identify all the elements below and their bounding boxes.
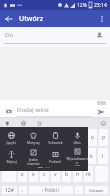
button[interactable]: Języki: [19, 119, 27, 127]
button[interactable]: Wyślij: [95, 106, 106, 117]
staticText: y: [58, 134, 61, 141]
button[interactable]: Motywy: [22, 129, 44, 147]
button[interactable]: Wyszukiwanie GIF: [66, 147, 88, 166]
staticText: m: [86, 171, 91, 178]
button[interactable]: d: [26, 148, 36, 164]
button[interactable]: Dodaj kontakt: [93, 29, 105, 41]
staticText: x: [32, 171, 35, 178]
staticText: Do: [5, 31, 14, 39]
button[interactable]: .: [75, 186, 83, 194]
staticText: b: [65, 171, 69, 178]
button[interactable]: Wybór: [3, 119, 11, 127]
staticText: .: [78, 187, 80, 194]
button[interactable]: p: [99, 129, 108, 146]
button[interactable]: t: [44, 129, 53, 146]
staticText: r: [36, 134, 39, 141]
staticText: n: [76, 171, 80, 178]
staticText: k: [90, 153, 93, 160]
button[interactable]: g: [50, 148, 60, 164]
staticText: 12%: [77, 2, 87, 9]
button[interactable]: Gotowe: [85, 186, 108, 194]
staticText: z: [21, 171, 24, 178]
button[interactable]: u: [66, 129, 75, 146]
staticText: v: [54, 171, 57, 178]
button[interactable]: Edytuj: [0, 147, 22, 166]
button[interactable]: n: [73, 166, 82, 182]
staticText: Wyszukiwanie GIF: [66, 156, 88, 166]
button[interactable]: a: [2, 148, 12, 164]
staticText: 12#: [5, 187, 14, 194]
staticText: g: [53, 153, 57, 160]
button[interactable]: m: [84, 166, 93, 182]
staticText: l: [102, 153, 104, 160]
button[interactable]: Schowek: [44, 129, 66, 147]
staticText: ,: [22, 187, 24, 194]
staticText: Schowek: [48, 140, 63, 145]
button[interactable]: c: [40, 166, 49, 182]
button[interactable]: 12#: [2, 186, 17, 194]
button[interactable]: ,: [19, 186, 27, 194]
button[interactable]: v: [51, 166, 60, 182]
staticText: a: [6, 153, 9, 160]
staticText: ‹ Polski ›: [42, 187, 60, 193]
staticText: 23:14: [94, 2, 107, 9]
button[interactable]: x: [29, 166, 38, 182]
button[interactable]: h: [62, 148, 72, 164]
button[interactable]: z: [18, 166, 27, 182]
button[interactable]: r: [33, 129, 42, 146]
staticText: Edytuj: [6, 159, 17, 164]
button[interactable]: [2, 166, 16, 182]
staticText: Motywy: [27, 140, 40, 145]
staticText: o: [91, 134, 95, 141]
button[interactable]: w: [12, 129, 20, 146]
staticText: Dodaj tekst: [17, 106, 49, 114]
button[interactable]: Rozmiar: [97, 101, 106, 105]
staticText: Jeden rozmiar: [27, 157, 40, 166]
staticText: Utwórz: [19, 14, 44, 24]
button[interactable]: l: [98, 148, 108, 164]
button[interactable]: b: [62, 166, 71, 182]
button[interactable]: Aparat: [4, 106, 15, 117]
staticText: Gotowe: [89, 188, 104, 193]
button[interactable]: Podziel: [44, 147, 66, 166]
button[interactable]: q: [2, 129, 10, 146]
button[interactable]: e: [22, 129, 31, 146]
button[interactable]: Języki: [0, 129, 22, 147]
staticText: j: [78, 153, 80, 160]
staticText: h: [65, 153, 69, 160]
button[interactable]: Wstecz: [0, 10, 17, 27]
staticText: Języki: [6, 140, 16, 145]
staticText: d: [29, 153, 33, 160]
staticText: w: [14, 134, 18, 141]
button[interactable]: Głos: [66, 129, 88, 147]
button[interactable]: Motywy: [35, 119, 43, 127]
button[interactable]: j: [74, 148, 84, 164]
button[interactable]: ‹ Polski ›: [29, 186, 73, 194]
button[interactable]: k: [86, 148, 96, 164]
button[interactable]: o: [88, 129, 97, 146]
staticText: c: [43, 171, 46, 178]
button[interactable]: Jeden rozmiar: [22, 147, 44, 166]
button[interactable]: f: [38, 148, 48, 164]
button[interactable]: s: [14, 148, 24, 164]
staticText: Głos: [73, 140, 81, 145]
button[interactable]: Emotikony: [99, 119, 107, 127]
button[interactable]: Więcej opcji: [93, 10, 110, 27]
button[interactable]: i: [77, 129, 86, 146]
button[interactable]: y: [55, 129, 64, 146]
staticText: Podziel: [49, 159, 61, 164]
staticText: p: [102, 134, 106, 141]
